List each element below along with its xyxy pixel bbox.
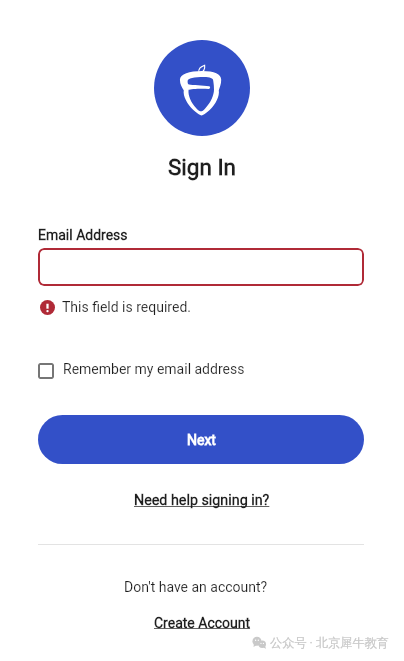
staticText: Email Address bbox=[38, 227, 128, 243]
staticText: 公众号 · 北京犀牛教育 bbox=[270, 635, 389, 650]
staticText: This field is required. bbox=[62, 299, 191, 315]
staticText: Remember my email address bbox=[63, 361, 245, 377]
staticText: Sign In bbox=[168, 154, 237, 180]
button[interactable]: Create Account bbox=[154, 615, 251, 631]
button[interactable]: Next bbox=[38, 415, 364, 464]
button[interactable]: Remember my email address bbox=[38, 361, 245, 377]
staticText: Need help signing in? bbox=[134, 492, 270, 509]
button[interactable]: Email Address input bbox=[38, 248, 364, 286]
staticText: Don't have an account? bbox=[124, 579, 268, 595]
button[interactable]: Need help signing in? bbox=[134, 492, 270, 509]
staticText: Next bbox=[187, 432, 216, 448]
staticText: Create Account bbox=[154, 615, 251, 631]
